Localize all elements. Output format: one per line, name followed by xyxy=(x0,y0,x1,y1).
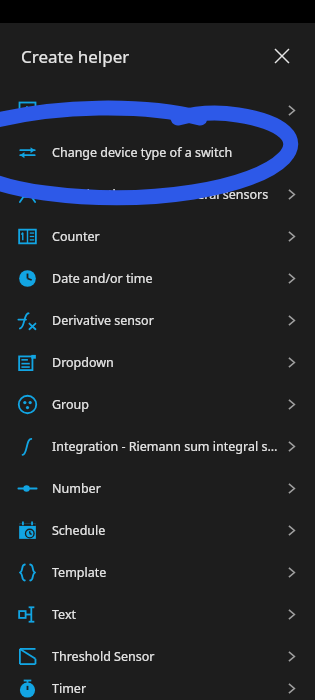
staticText: Derivative sensor xyxy=(52,312,280,329)
button[interactable]: Text xyxy=(0,593,315,635)
staticText: Button xyxy=(52,102,280,119)
button[interactable]: Number xyxy=(0,467,315,509)
staticText: Counter xyxy=(52,228,280,245)
staticText: Create helper xyxy=(21,45,130,68)
button[interactable]: Dropdown xyxy=(0,341,315,383)
staticText: Group xyxy=(52,396,280,413)
staticText: Combine the state of several sensors xyxy=(52,186,280,203)
button[interactable]: Date and/or time xyxy=(0,257,315,299)
button[interactable]: Timer xyxy=(0,677,315,700)
button[interactable]: Integration - Riemann sum integral senso… xyxy=(0,425,315,467)
staticText: Text xyxy=(52,606,280,623)
staticText: Template xyxy=(52,564,280,581)
button[interactable]: Close xyxy=(265,39,299,73)
button[interactable]: Threshold Sensor xyxy=(0,635,315,677)
staticText: Integration - Riemann sum integral senso… xyxy=(52,438,280,455)
button[interactable]: Counter xyxy=(0,215,315,257)
staticText: Dropdown xyxy=(52,354,280,371)
button[interactable]: Combine the state of several sensors xyxy=(0,173,315,215)
button[interactable]: Button xyxy=(0,89,315,131)
button[interactable]: Schedule xyxy=(0,509,315,551)
button[interactable]: Change device type of a switch xyxy=(0,131,315,173)
button[interactable]: Derivative sensor xyxy=(0,299,315,341)
button[interactable]: Group xyxy=(0,383,315,425)
staticText: Number xyxy=(52,480,280,497)
button[interactable]: Template xyxy=(0,551,315,593)
staticText: Change device type of a switch xyxy=(52,144,280,161)
staticText: Timer xyxy=(52,680,280,697)
staticText: Schedule xyxy=(52,522,280,539)
staticText: Threshold Sensor xyxy=(52,648,280,665)
staticText: Date and/or time xyxy=(52,270,280,287)
